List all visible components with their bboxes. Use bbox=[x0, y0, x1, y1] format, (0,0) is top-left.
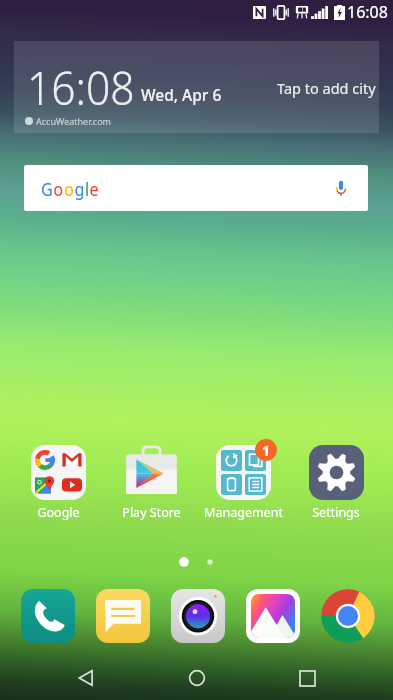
staticText: l bbox=[85, 176, 89, 201]
button[interactable]: Google bbox=[14, 442, 102, 521]
button[interactable]: Messages bbox=[96, 589, 150, 643]
staticText: g bbox=[74, 176, 85, 201]
button[interactable]: Camera bbox=[171, 589, 225, 643]
staticText: e bbox=[89, 176, 99, 201]
staticText: G bbox=[41, 176, 53, 201]
staticText: AccuWeather.com bbox=[36, 115, 112, 127]
staticText: Google bbox=[37, 504, 80, 521]
button[interactable]: Chrome bbox=[321, 589, 375, 643]
button[interactable]: 16:08 bbox=[14, 41, 379, 133]
staticText: o bbox=[64, 176, 74, 201]
button[interactable]: Play Store bbox=[107, 442, 195, 521]
staticText: o bbox=[53, 176, 64, 201]
button[interactable]: G bbox=[24, 165, 368, 211]
button[interactable]: Home bbox=[172, 656, 222, 700]
staticText: 1 bbox=[262, 441, 271, 460]
staticText: Management bbox=[204, 504, 283, 521]
button[interactable]: Phone bbox=[21, 589, 75, 643]
button[interactable]: Recents bbox=[282, 656, 332, 700]
staticText: Wed, Apr 6 bbox=[141, 84, 222, 105]
button[interactable]: 1 bbox=[199, 442, 287, 521]
staticText: Play Store bbox=[122, 504, 181, 521]
staticText: Tap to add city bbox=[277, 78, 376, 98]
button[interactable]: Back bbox=[61, 656, 111, 700]
button[interactable]: Settings bbox=[292, 442, 380, 521]
button[interactable]: Gallery bbox=[246, 589, 300, 643]
staticText: 16:08 bbox=[347, 1, 388, 23]
staticText: 16:08 bbox=[27, 56, 135, 119]
staticText: Settings bbox=[312, 504, 360, 521]
other: Voice search bbox=[333, 178, 349, 199]
